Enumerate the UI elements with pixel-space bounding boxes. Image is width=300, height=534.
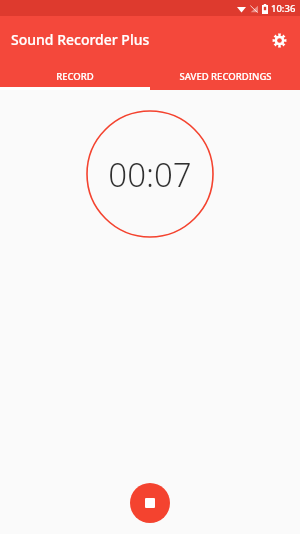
staticText: Sound Recorder Plus: [11, 30, 150, 49]
button[interactable]: Settings: [264, 25, 294, 55]
staticText: SAVED RECORDINGS: [179, 70, 272, 83]
staticText: 00:07: [108, 152, 192, 197]
button[interactable]: RECORD: [0, 63, 150, 90]
button[interactable]: Stop recording: [130, 483, 170, 523]
staticText: RECORD: [56, 70, 94, 83]
button[interactable]: SAVED RECORDINGS: [150, 63, 300, 90]
staticText: 10:36: [271, 2, 296, 15]
